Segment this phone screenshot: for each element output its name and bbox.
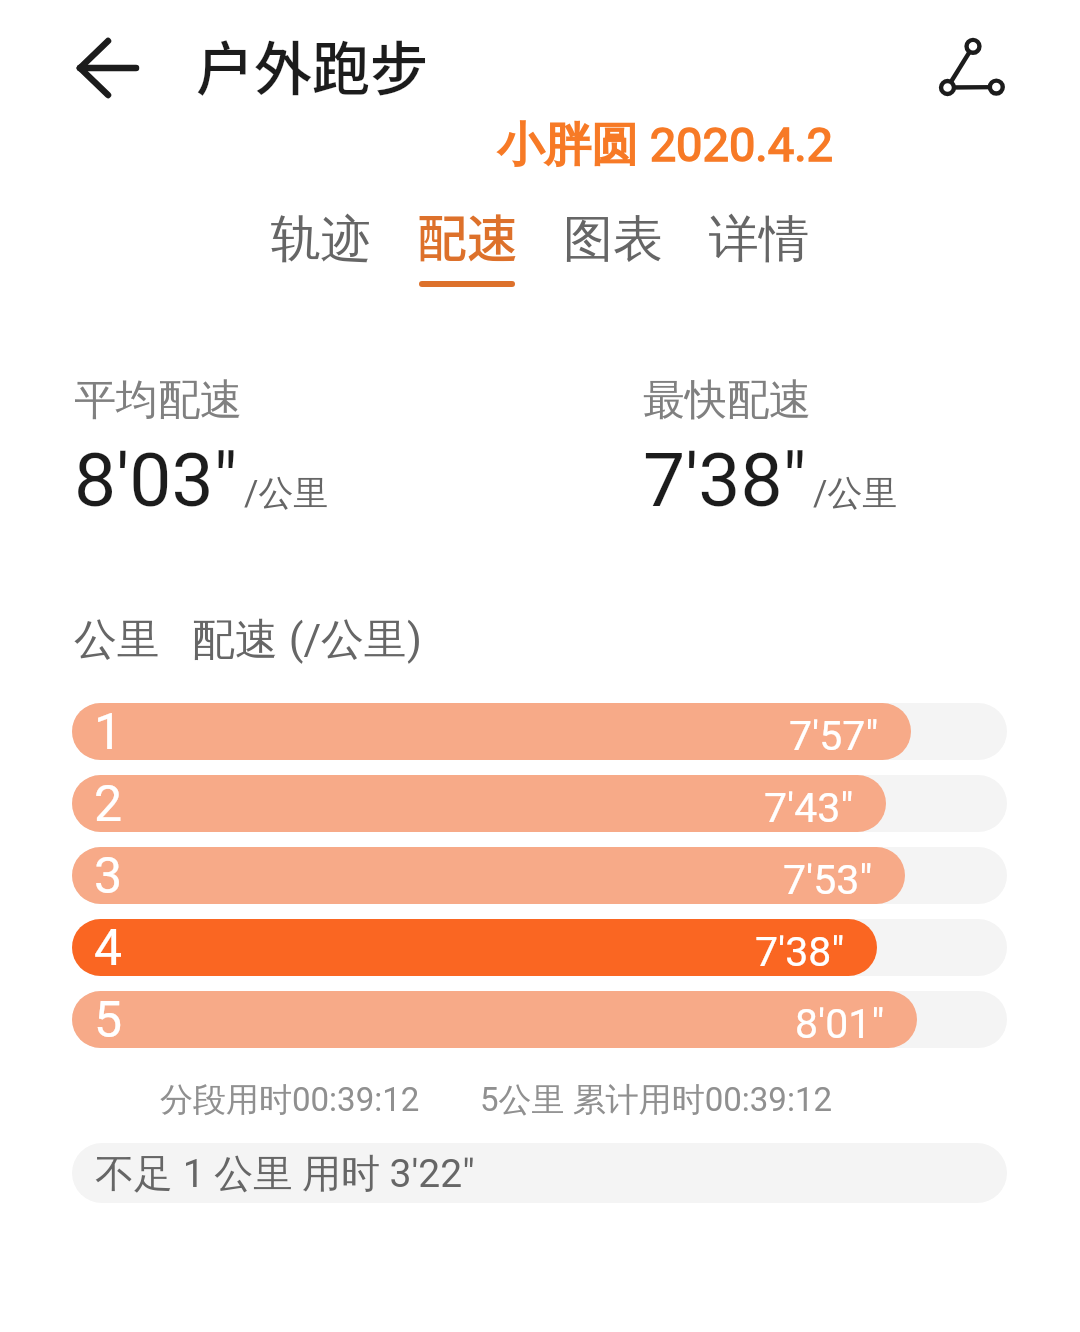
staticText: 轨迹 — [271, 208, 371, 271]
staticText: 平均配速 — [74, 374, 242, 427]
staticText: 配速 — [417, 199, 517, 271]
staticText: 7'43" — [764, 784, 854, 832]
button[interactable]: 图表 — [540, 208, 686, 288]
staticText: 5 — [94, 991, 123, 1048]
button[interactable]: 不足 1 公里 用时 3'22" — [72, 1143, 1007, 1203]
staticText: 8'03" — [74, 436, 238, 524]
staticText: 不足 1 公里 用时 3'22" — [95, 1149, 475, 1198]
staticText: 7'57" — [789, 712, 879, 760]
staticText: 2 — [94, 775, 123, 832]
staticText: 最快配速 — [643, 374, 811, 427]
staticText: 7'38" — [643, 436, 807, 524]
staticText: /公里 — [813, 471, 898, 515]
staticText: 5公里 累计用时00:39:12 — [480, 1079, 832, 1121]
button[interactable]: Share — [916, 12, 1026, 122]
button[interactable]: 轨迹 — [248, 208, 394, 288]
staticText: 1 — [94, 703, 123, 760]
staticText: 图表 — [563, 208, 663, 271]
button[interactable] — [72, 919, 1007, 976]
staticText: 8'01" — [795, 1000, 885, 1048]
button[interactable]: Back — [50, 30, 168, 148]
staticText: 分段用时00:39:12 — [160, 1079, 420, 1121]
staticText: 7'38" — [755, 928, 845, 976]
staticText: 7'53" — [783, 856, 873, 904]
staticText: 4 — [94, 919, 123, 976]
staticText: 3 — [94, 847, 123, 904]
button[interactable] — [72, 703, 1007, 760]
button[interactable] — [72, 775, 1007, 832]
button[interactable] — [72, 991, 1007, 1048]
staticText: 公里 配速 (/公里) — [74, 613, 423, 667]
button[interactable] — [72, 847, 1007, 904]
staticText: 户外跑步 — [196, 23, 429, 107]
staticText: /公里 — [244, 471, 329, 515]
button[interactable]: 配速 — [394, 208, 540, 288]
button[interactable]: 详情 — [686, 208, 832, 288]
staticText: 小胖圆 2020.4.2 — [330, 116, 1000, 175]
staticText: 详情 — [709, 208, 809, 271]
